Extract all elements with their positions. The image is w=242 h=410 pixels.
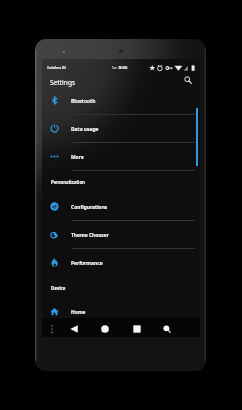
button[interactable]: Theme Chooser [42, 220, 200, 248]
staticText: Theme Chooser [71, 232, 109, 239]
button[interactable]: Configurations [42, 192, 200, 220]
staticText: Vodafone IN [47, 66, 66, 70]
button[interactable]: More [42, 142, 200, 170]
button[interactable]: Home [42, 297, 200, 325]
button[interactable]: Bluetooth [42, 86, 200, 114]
staticText: Sun 23 [112, 66, 122, 70]
staticText: 9:06 [119, 65, 128, 71]
staticText: Configurations [71, 204, 108, 211]
staticText: Home [71, 309, 86, 316]
button[interactable]: Back [67, 318, 81, 337]
button[interactable]: Home [98, 318, 112, 337]
button[interactable]: Search [181, 73, 195, 87]
button[interactable]: Performance [42, 248, 200, 276]
staticText: Performance [71, 260, 103, 267]
staticText: Settings [50, 78, 76, 87]
staticText: More [71, 154, 84, 161]
button[interactable]: Menu [45, 318, 59, 337]
staticText: Personalization [51, 179, 85, 185]
button[interactable]: Data usage [42, 114, 200, 142]
staticText: Device [51, 285, 66, 291]
staticText: Bluetooth [71, 98, 96, 105]
staticText: Data usage [71, 126, 99, 133]
button[interactable]: Search [160, 318, 174, 337]
button[interactable]: Recents [130, 318, 144, 337]
